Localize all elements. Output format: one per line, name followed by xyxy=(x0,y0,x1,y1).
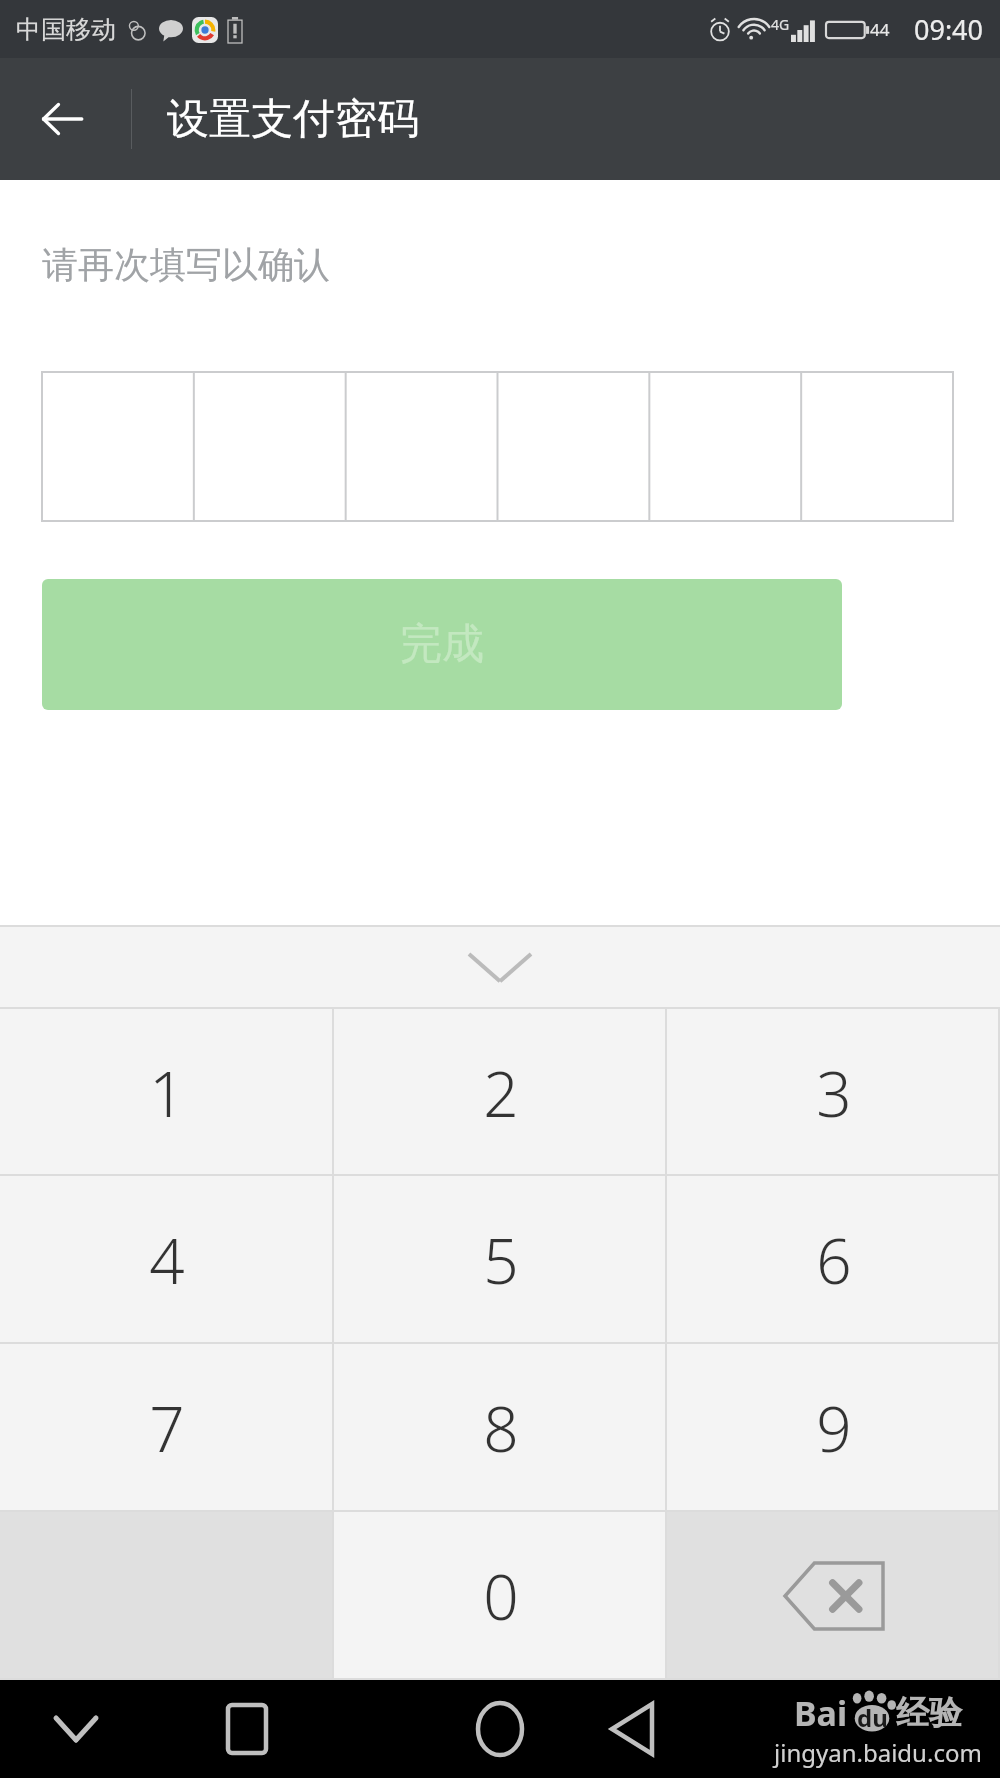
button[interactable]: Recents xyxy=(205,1687,289,1771)
button[interactable]: 8 xyxy=(334,1344,667,1512)
staticText: 4 xyxy=(149,1218,185,1302)
button[interactable]: 0 xyxy=(334,1512,667,1680)
button[interactable]: 3 xyxy=(667,1009,1000,1176)
staticText: 请再次填写以确认 xyxy=(42,242,330,287)
staticText: 中国移动 xyxy=(16,14,116,45)
staticText: 2 xyxy=(483,1051,519,1135)
button[interactable]: 7 xyxy=(0,1344,334,1512)
button[interactable]: 5 xyxy=(334,1176,667,1344)
button[interactable]: Back xyxy=(22,79,102,159)
staticText: 6 xyxy=(816,1218,852,1302)
button[interactable]: 4 xyxy=(0,1176,334,1344)
staticText: 1 xyxy=(149,1051,185,1135)
button[interactable]: Hide keyboard xyxy=(0,925,1000,1009)
button[interactable]: Home xyxy=(458,1687,542,1771)
staticText: 5 xyxy=(483,1218,519,1302)
button[interactable] xyxy=(42,372,953,521)
staticText: 9 xyxy=(816,1386,852,1470)
button[interactable]: Back xyxy=(590,1687,674,1771)
button[interactable]: 完成 xyxy=(42,579,842,710)
staticText: 4G xyxy=(771,15,790,34)
button[interactable]: 6 xyxy=(667,1176,1000,1344)
staticText: 3 xyxy=(816,1051,852,1135)
staticText: du xyxy=(857,1701,888,1734)
staticText: 44 xyxy=(870,18,890,41)
staticText: jingyan.baidu.com xyxy=(774,1736,982,1769)
staticText: 完成 xyxy=(400,618,484,671)
button[interactable]: Backspace xyxy=(667,1512,1000,1680)
staticText: 经验 xyxy=(896,1692,962,1734)
staticText: 8 xyxy=(483,1386,519,1470)
button[interactable]: Hide keyboard xyxy=(36,1689,116,1769)
staticText: 7 xyxy=(149,1386,185,1470)
staticText: 设置支付密码 xyxy=(167,93,419,146)
staticText: 0 xyxy=(483,1554,519,1638)
button[interactable]: 9 xyxy=(667,1344,1000,1512)
staticText: Bai xyxy=(794,1690,848,1736)
button[interactable]: 1 xyxy=(0,1009,334,1176)
staticText: 09:40 xyxy=(914,11,984,48)
button[interactable]: 2 xyxy=(334,1009,667,1176)
